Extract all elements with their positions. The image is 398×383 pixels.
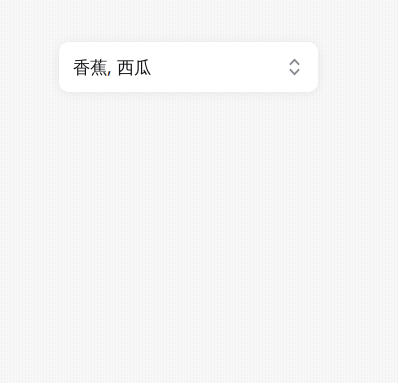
button[interactable]: 香蕉, 西瓜 [59, 42, 318, 92]
staticText: 香蕉, 西瓜 [73, 55, 151, 78]
